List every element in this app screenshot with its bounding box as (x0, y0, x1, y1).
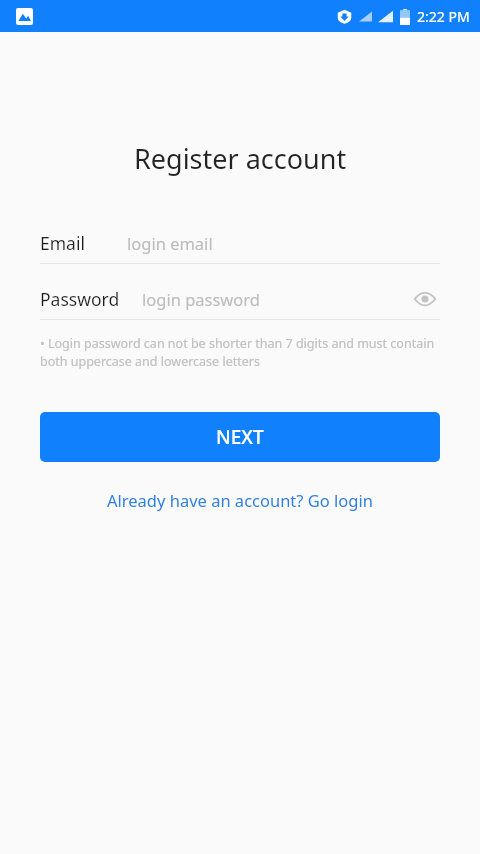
staticText: • Login password can not be shorter than… (40, 335, 452, 370)
staticText: Already have an account? Go login (107, 489, 373, 511)
staticText: 2:22 PM (417, 7, 470, 26)
button[interactable]: login password (142, 288, 410, 310)
staticText: Password (40, 287, 120, 311)
staticText: Email (40, 231, 85, 255)
staticText: login password (142, 288, 260, 310)
staticText: NEXT (216, 424, 264, 450)
button[interactable]: login email (127, 232, 440, 254)
staticText: login email (127, 232, 213, 254)
button[interactable]: Already have an account? Go login (0, 483, 480, 517)
button[interactable]: NEXT (40, 412, 440, 462)
staticText: Register account (134, 140, 347, 177)
button[interactable]: Show password (410, 284, 440, 314)
